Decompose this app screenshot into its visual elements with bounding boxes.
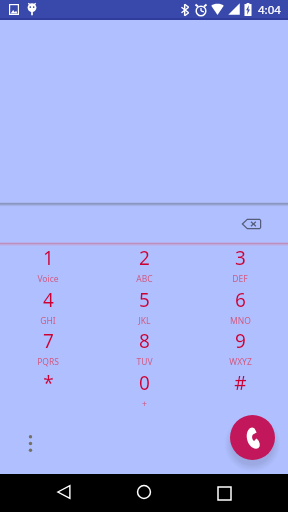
button[interactable]: 5: [96, 285, 192, 326]
staticText: MNO: [230, 315, 251, 327]
staticText: JKL: [138, 315, 151, 327]
staticText: 8: [139, 328, 150, 354]
staticText: 5: [139, 287, 150, 313]
staticText: +: [142, 398, 147, 410]
button[interactable]: Backspace: [233, 206, 269, 242]
button[interactable]: Back: [44, 474, 84, 510]
button[interactable]: Recents: [204, 475, 244, 511]
button[interactable]: 7: [0, 326, 96, 367]
button[interactable]: More options: [14, 427, 46, 459]
button[interactable]: 8: [96, 326, 192, 367]
button[interactable]: 4: [0, 285, 96, 326]
button[interactable]: 2: [96, 244, 192, 285]
staticText: Voice: [37, 273, 59, 285]
staticText: PQRS: [37, 356, 59, 368]
button[interactable]: #: [192, 367, 288, 408]
staticText: TUV: [136, 356, 153, 368]
staticText: 3: [235, 245, 246, 271]
staticText: 1: [43, 245, 54, 271]
button[interactable]: 0: [96, 367, 192, 408]
button[interactable]: 9: [192, 326, 288, 367]
staticText: 7: [43, 328, 54, 354]
staticText: ABC: [136, 273, 153, 285]
staticText: 2: [139, 245, 150, 271]
staticText: #: [234, 370, 247, 396]
staticText: WXYZ: [229, 356, 252, 368]
staticText: 9: [235, 328, 246, 354]
staticText: 4: [43, 287, 54, 313]
staticText: *: [43, 370, 54, 396]
button[interactable]: Call: [230, 415, 275, 460]
staticText: GHI: [40, 315, 56, 327]
staticText: 0: [139, 370, 150, 396]
button[interactable]: Home: [124, 474, 164, 510]
staticText: 6: [235, 287, 246, 313]
button[interactable]: 3: [192, 244, 288, 285]
staticText: 4:04: [258, 2, 281, 18]
button[interactable]: 1: [0, 244, 96, 285]
staticText: DEF: [232, 273, 248, 285]
button[interactable]: 6: [192, 285, 288, 326]
button[interactable]: *: [0, 367, 96, 408]
